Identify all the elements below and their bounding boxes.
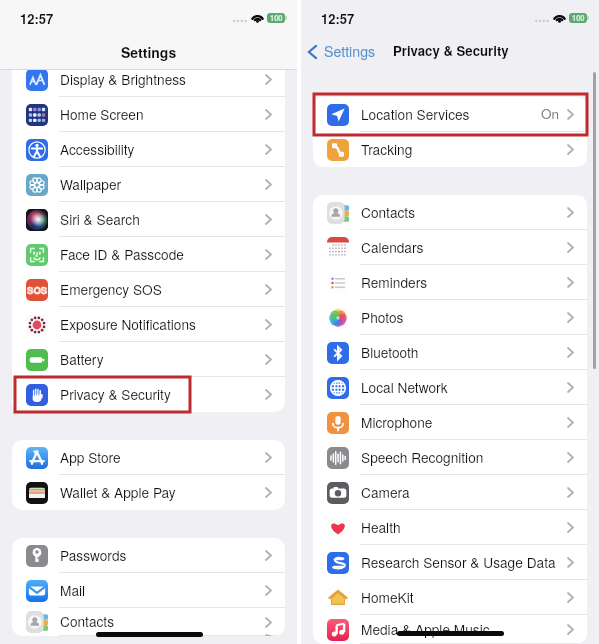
button[interactable]: Settings	[307, 40, 377, 64]
button[interactable]: Local Network	[313, 370, 587, 405]
button[interactable]: Calendars	[313, 230, 587, 265]
staticText: Microphone	[361, 412, 433, 432]
staticText: Photos	[361, 307, 404, 327]
button[interactable]: App Store	[12, 440, 285, 475]
button[interactable]: Wallet & Apple Pay	[12, 475, 285, 510]
button[interactable]: Speech Recognition	[313, 440, 587, 475]
staticText: Camera	[361, 482, 410, 502]
staticText: Calendars	[361, 237, 424, 257]
staticText: Emergency SOS	[60, 279, 162, 299]
staticText: Display & Brightness	[60, 70, 186, 89]
staticText: Privacy & Security	[60, 384, 171, 404]
staticText: Location Services	[361, 104, 470, 124]
button[interactable]: Home Screen	[12, 97, 285, 132]
staticText: Speech Recognition	[361, 447, 484, 467]
staticText: Exposure Notifications	[60, 314, 196, 334]
button[interactable]: Battery	[12, 342, 285, 377]
button[interactable]: Passwords	[12, 538, 285, 573]
button[interactable]: Wallpaper	[12, 167, 285, 202]
staticText: Settings	[324, 41, 376, 61]
button[interactable]: Microphone	[313, 405, 587, 440]
button[interactable]: Reminders	[313, 265, 587, 300]
staticText: HomeKit	[361, 587, 414, 607]
staticText: Privacy & Security	[393, 41, 509, 60]
staticText: Contacts	[361, 202, 416, 222]
staticText: Mail	[60, 580, 86, 600]
button[interactable]: Tracking	[313, 132, 587, 167]
staticText: 100	[270, 13, 283, 23]
staticText: Research Sensor & Usage Data	[361, 552, 556, 572]
staticText: Face ID & Passcode	[60, 244, 184, 264]
button[interactable]: Location Services	[313, 97, 587, 132]
staticText: Wallpaper	[60, 174, 122, 194]
staticText: Wallet & Apple Pay	[60, 482, 176, 502]
staticText: SOS	[27, 283, 48, 297]
staticText: Battery	[60, 349, 104, 369]
staticText: Local Network	[361, 377, 448, 397]
staticText: Health	[361, 517, 401, 537]
button[interactable]: Media & Apple Music	[313, 615, 587, 644]
button[interactable]: Camera	[313, 475, 587, 510]
button[interactable]: Face ID & Passcode	[12, 237, 285, 272]
staticText: Bluetooth	[361, 342, 419, 362]
button[interactable]: Photos	[313, 300, 587, 335]
staticText: Contacts	[60, 611, 115, 631]
staticText: Accessibility	[60, 139, 135, 159]
button[interactable]: Bluetooth	[313, 335, 587, 370]
button[interactable]: Privacy & Security	[12, 377, 285, 412]
button[interactable]: Exposure Notifications	[12, 307, 285, 342]
staticText: Passwords	[60, 545, 127, 565]
staticText: App Store	[60, 447, 121, 467]
staticText: Reminders	[361, 272, 428, 292]
button[interactable]: HomeKit	[313, 580, 587, 615]
button[interactable]: Accessibility	[12, 132, 285, 167]
staticText: 12:57	[20, 9, 54, 28]
button[interactable]: Siri & Search	[12, 202, 285, 237]
button[interactable]: Display & Brightness	[12, 70, 285, 97]
staticText: 100	[572, 13, 585, 23]
button[interactable]: Contacts	[313, 195, 587, 230]
staticText: Home Screen	[60, 104, 144, 124]
staticText: On	[541, 104, 560, 123]
staticText: Settings	[121, 42, 177, 62]
staticText: Siri & Search	[60, 209, 140, 229]
button[interactable]: Contacts	[12, 608, 285, 636]
button[interactable]: SOS	[12, 272, 285, 307]
staticText: Media & Apple Music	[361, 619, 490, 639]
button[interactable]: Mail	[12, 573, 285, 608]
staticText: Tracking	[361, 139, 413, 159]
button[interactable]: Research Sensor & Usage Data	[313, 545, 587, 580]
button[interactable]: Health	[313, 510, 587, 545]
staticText: 12:57	[321, 9, 355, 28]
